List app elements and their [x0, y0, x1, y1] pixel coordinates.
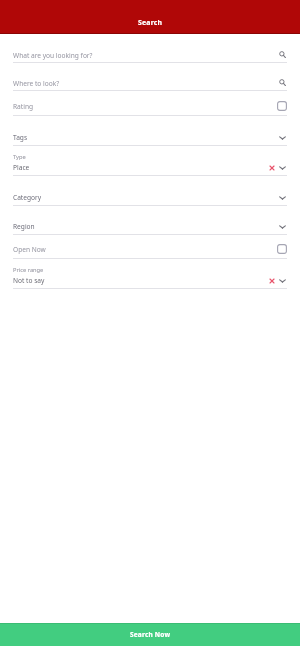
staticText: Search Now — [130, 630, 171, 639]
button[interactable]: Search Now — [0, 623, 300, 646]
button[interactable]: Price range — [0, 259, 300, 289]
button[interactable]: Where to look? — [0, 63, 300, 91]
button[interactable]: Search — [273, 48, 286, 61]
button[interactable]: What are you looking for? — [0, 34, 300, 63]
button[interactable]: Search — [273, 76, 286, 89]
staticText: Region — [13, 222, 35, 231]
button[interactable]: Clear — [266, 164, 274, 172]
button[interactable]: Rating — [0, 91, 300, 116]
button[interactable]: Tags — [0, 116, 300, 146]
staticText: Place — [13, 163, 30, 172]
staticText: What are you looking for? — [13, 51, 93, 60]
button[interactable]: Expand — [273, 161, 286, 174]
button[interactable]: Clear — [266, 277, 274, 285]
button[interactable]: Region — [0, 206, 300, 235]
button[interactable]: Toggle — [274, 242, 287, 255]
button[interactable]: Type — [0, 146, 300, 176]
button[interactable]: Toggle — [274, 99, 287, 112]
button[interactable]: Category — [0, 176, 300, 206]
staticText: Tags — [13, 133, 28, 142]
staticText: Rating — [13, 102, 34, 111]
staticText: Category — [13, 193, 42, 202]
button[interactable]: Expand — [273, 191, 286, 204]
staticText: Type — [13, 153, 26, 161]
staticText: Where to look? — [13, 79, 60, 88]
staticText: Search — [138, 18, 163, 27]
button[interactable]: Open Now — [0, 235, 300, 259]
staticText: Not to say — [13, 276, 45, 285]
staticText: Price range — [13, 266, 44, 274]
staticText: Open Now — [13, 245, 46, 254]
button[interactable]: Expand — [273, 131, 286, 144]
button[interactable]: Expand — [273, 274, 286, 287]
button[interactable]: Expand — [273, 220, 286, 233]
